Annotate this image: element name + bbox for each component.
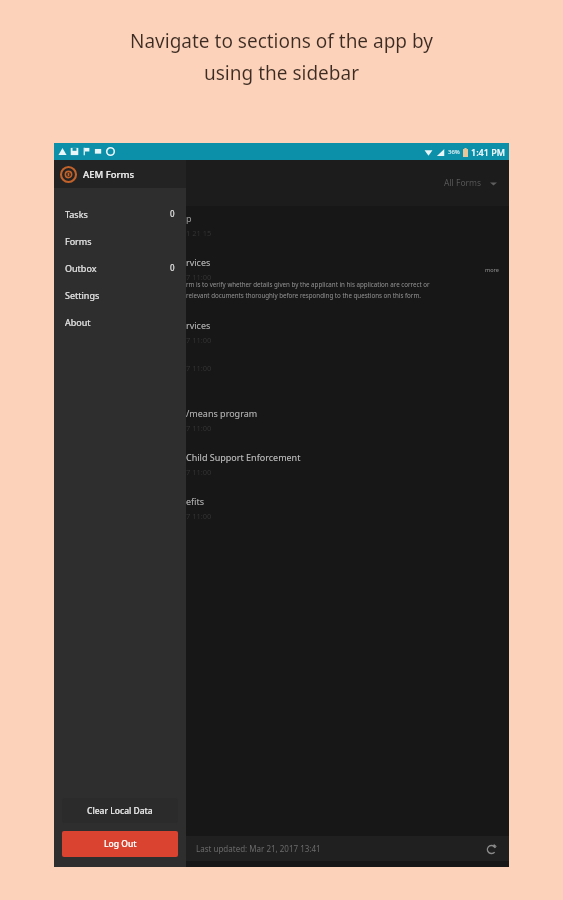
staticText: Last updated: Mar 21, 2017 13:41 bbox=[196, 843, 321, 854]
button[interactable]: rvices bbox=[186, 250, 509, 313]
staticText: 7 11:00 bbox=[186, 272, 212, 280]
staticText: About bbox=[65, 316, 91, 328]
staticText: AEM Forms bbox=[83, 168, 135, 181]
staticText: Child Support Enforcement bbox=[186, 451, 301, 463]
staticText: 7 11:00 bbox=[186, 467, 212, 477]
staticText: Forms bbox=[65, 235, 92, 247]
staticText: efits bbox=[186, 495, 205, 507]
button[interactable]: Child Support Enforcement bbox=[186, 445, 509, 489]
button[interactable]: Tasks bbox=[54, 200, 186, 227]
button[interactable]: p bbox=[186, 206, 509, 250]
button[interactable]: rvices bbox=[186, 313, 509, 357]
staticText: more bbox=[485, 266, 499, 273]
button[interactable]: Forms bbox=[54, 227, 186, 254]
staticText: Settings bbox=[65, 289, 100, 301]
staticText: rvices bbox=[186, 256, 211, 268]
staticText: 7 11:00 bbox=[186, 423, 212, 433]
staticText: Clear Local Data bbox=[87, 805, 153, 817]
button[interactable]: Last updated: Mar 21, 2017 13:41 bbox=[186, 836, 509, 861]
button[interactable]: All Forms bbox=[432, 171, 509, 195]
staticText: 0 bbox=[170, 208, 175, 219]
button[interactable]: Settings bbox=[54, 281, 186, 308]
staticText: 36% bbox=[448, 148, 460, 156]
button[interactable]: Log Out bbox=[62, 831, 178, 857]
button[interactable]: efits bbox=[186, 489, 509, 533]
staticText: /means program bbox=[186, 407, 258, 419]
staticText: Navigate to sections of the app by bbox=[130, 28, 433, 54]
button[interactable]: Clear Local Data bbox=[62, 798, 178, 823]
staticText: 1 21 15 bbox=[186, 228, 212, 238]
staticText: All Forms bbox=[444, 177, 482, 189]
staticText: Tasks bbox=[65, 208, 88, 220]
staticText: using the sidebar bbox=[204, 60, 359, 86]
staticText: 7 11:00 bbox=[186, 363, 212, 373]
staticText: rvices bbox=[186, 319, 211, 331]
staticText: 7 11:00 bbox=[186, 511, 212, 521]
button[interactable]: More options bbox=[485, 266, 499, 273]
button[interactable]: AEM Forms bbox=[54, 160, 186, 188]
staticText: Outbox bbox=[65, 262, 97, 274]
staticText: relevant documents thoroughly before res… bbox=[186, 291, 421, 299]
staticText: rm is to verify whether details given by… bbox=[186, 280, 430, 288]
button[interactable]: Outbox bbox=[54, 254, 186, 281]
button[interactable]: About bbox=[54, 308, 186, 335]
staticText: Log Out bbox=[104, 838, 137, 850]
staticText: 7 11:00 bbox=[186, 335, 212, 345]
staticText: 1:41 PM bbox=[471, 146, 505, 158]
staticText: p bbox=[186, 212, 192, 224]
staticText: 0 bbox=[170, 262, 175, 273]
button[interactable]: /means program bbox=[186, 401, 509, 445]
button[interactable]: Refresh bbox=[483, 841, 499, 857]
